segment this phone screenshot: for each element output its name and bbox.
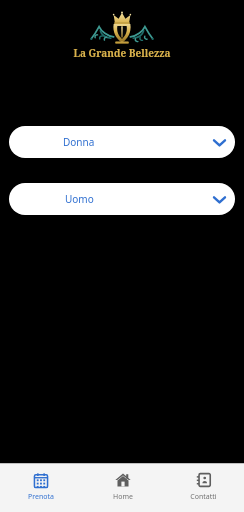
staticText: Prenota <box>28 492 54 502</box>
staticText: Donna <box>63 135 95 149</box>
button[interactable]: Prenota <box>0 464 82 512</box>
staticText: Uomo <box>65 192 94 206</box>
staticText: Home <box>113 492 133 502</box>
other: Contatti <box>196 472 212 488</box>
staticText: La Grande Bellezza <box>73 46 171 59</box>
button[interactable]: Contatti <box>163 464 244 512</box>
staticText: Contatti <box>190 492 217 502</box>
other: Prenota <box>33 472 49 488</box>
button[interactable]: Donna <box>9 126 235 158</box>
button[interactable]: Home <box>82 464 163 512</box>
button[interactable]: Uomo <box>9 183 235 215</box>
other: Home <box>115 472 131 488</box>
